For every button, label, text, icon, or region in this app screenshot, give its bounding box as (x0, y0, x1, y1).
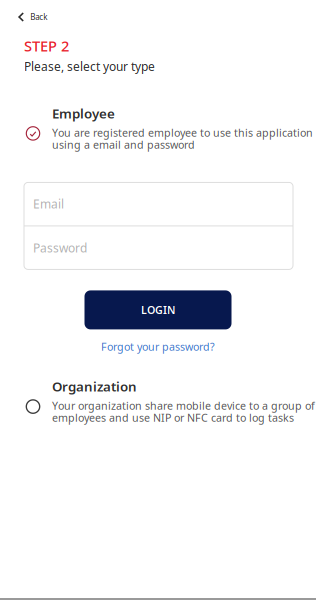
button[interactable]: Email (24, 182, 293, 225)
staticText: Please, select your type (24, 58, 155, 74)
staticText: employees and use NIP or NFC card to log… (52, 411, 294, 425)
button[interactable]: Back (0, 0, 59, 31)
button[interactable]: Employee (0, 104, 316, 149)
button[interactable]: Organization (0, 378, 316, 423)
staticText: LOGIN (141, 303, 175, 317)
staticText: STEP 2 (24, 36, 69, 55)
staticText: Your organization share mobile device to… (52, 399, 315, 413)
staticText: Password (33, 240, 87, 256)
button[interactable]: LOGIN (84, 290, 231, 329)
staticText: You are registered employee to use this … (52, 125, 313, 140)
button[interactable]: Forgot your password? (93, 336, 223, 357)
staticText: Employee (52, 104, 115, 122)
button[interactable]: Password (24, 226, 293, 269)
staticText: Email (33, 196, 64, 212)
staticText: Forgot your password? (101, 339, 215, 354)
staticText: Organization (52, 378, 137, 395)
staticText: using a email and password (52, 137, 195, 152)
staticText: Back (30, 12, 47, 22)
